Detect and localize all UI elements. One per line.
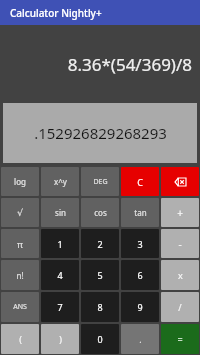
staticText: + bbox=[177, 206, 183, 220]
staticText: 3 bbox=[137, 238, 143, 250]
button[interactable]: ANS bbox=[1, 292, 39, 322]
button[interactable]: DEG bbox=[81, 167, 119, 196]
staticText: cos bbox=[94, 207, 107, 218]
staticText: ( bbox=[19, 333, 22, 345]
staticText: . bbox=[139, 333, 142, 345]
button[interactable]: x^y bbox=[41, 167, 79, 196]
button[interactable]: 7 bbox=[41, 292, 79, 322]
staticText: DEG bbox=[93, 177, 108, 187]
staticText: C bbox=[137, 176, 143, 188]
button[interactable]: / bbox=[161, 292, 199, 322]
button[interactable]: x bbox=[161, 260, 199, 290]
button[interactable]: 5 bbox=[81, 260, 119, 290]
staticText: x bbox=[178, 269, 183, 281]
button[interactable]: 6 bbox=[121, 260, 159, 290]
button[interactable]: 2 bbox=[81, 229, 119, 258]
staticText: π bbox=[17, 238, 23, 250]
staticText: - bbox=[178, 237, 182, 251]
button[interactable]: ) bbox=[41, 324, 79, 354]
button[interactable]: tan bbox=[121, 198, 159, 227]
button[interactable]: 9 bbox=[121, 292, 159, 322]
button[interactable]: C bbox=[121, 167, 159, 196]
staticText: ANS bbox=[13, 302, 27, 312]
button[interactable]: sin bbox=[41, 198, 79, 227]
staticText: tan bbox=[134, 207, 147, 218]
button[interactable]: 4 bbox=[41, 260, 79, 290]
button[interactable]: log bbox=[1, 167, 39, 196]
staticText: 8.36*(54/369)/8 bbox=[67, 53, 192, 76]
staticText: 6 bbox=[137, 269, 143, 281]
staticText: 9 bbox=[137, 301, 143, 313]
staticText: 1 bbox=[57, 238, 63, 250]
staticText: = bbox=[177, 333, 183, 345]
staticText: 4 bbox=[57, 269, 63, 281]
staticText: 0 bbox=[97, 333, 103, 345]
button[interactable]: ( bbox=[1, 324, 39, 354]
staticText: 5 bbox=[97, 269, 103, 281]
staticText: 7 bbox=[57, 301, 63, 313]
staticText: sin bbox=[55, 207, 66, 218]
button[interactable]: 0 bbox=[81, 324, 119, 354]
button[interactable]: cos bbox=[81, 198, 119, 227]
staticText: x^y bbox=[54, 176, 67, 187]
staticText: 8 bbox=[97, 301, 103, 313]
staticText: n! bbox=[16, 270, 24, 281]
button[interactable]: - bbox=[161, 229, 199, 258]
staticText: .152926829268293 bbox=[34, 123, 167, 143]
button[interactable]: n! bbox=[1, 260, 39, 290]
staticText: log bbox=[14, 176, 26, 187]
staticText: / bbox=[178, 301, 182, 313]
button[interactable]: . bbox=[121, 324, 159, 354]
staticText: 2 bbox=[97, 238, 103, 250]
button[interactable]: √ bbox=[1, 198, 39, 227]
button[interactable]: 8 bbox=[81, 292, 119, 322]
staticText: Calculator Nightly+ bbox=[10, 6, 102, 20]
staticText: √ bbox=[17, 208, 23, 218]
button[interactable]: + bbox=[161, 198, 199, 227]
staticText: ) bbox=[59, 333, 62, 345]
button[interactable]: = bbox=[161, 324, 199, 354]
button[interactable]: Backspace bbox=[161, 167, 199, 196]
button[interactable]: π bbox=[1, 229, 39, 258]
button[interactable]: 1 bbox=[41, 229, 79, 258]
button[interactable]: 3 bbox=[121, 229, 159, 258]
